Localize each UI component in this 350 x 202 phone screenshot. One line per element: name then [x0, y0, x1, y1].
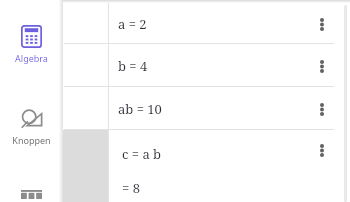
staticText: ab = 10 [118, 100, 162, 118]
staticText: b = 4 [118, 57, 148, 75]
button[interactable]: More options [312, 140, 332, 160]
button[interactable]: a = 2 [63, 3, 350, 44]
button[interactable]: b = 4 [63, 44, 350, 87]
button[interactable]: Algebra [0, 22, 63, 67]
staticText: = 8 [122, 179, 140, 197]
staticText: Algebra [15, 52, 48, 64]
button[interactable]: c = a b [109, 130, 350, 202]
button[interactable]: Knoppen [0, 105, 63, 149]
staticText: c = a b [122, 145, 162, 163]
staticText: Knoppen [12, 134, 51, 146]
staticText: a = 2 [118, 15, 147, 33]
button[interactable]: More options [312, 99, 332, 119]
button[interactable]: ab = 10 [63, 87, 350, 130]
button[interactable]: More options [312, 14, 332, 34]
button[interactable]: Tabel [0, 187, 63, 202]
button[interactable]: More options [312, 56, 332, 76]
